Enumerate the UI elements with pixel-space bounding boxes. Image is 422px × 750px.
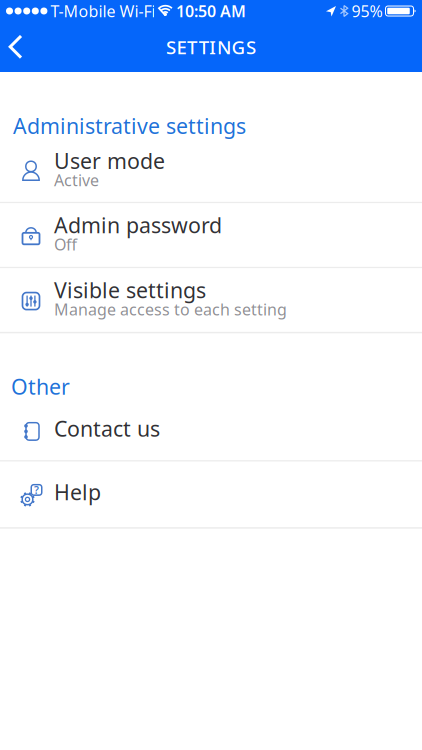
button[interactable]: ? [0,462,422,527]
staticText: SETTINGS [166,35,256,59]
staticText: 10:50 AM [176,0,246,22]
staticText: Help [54,478,101,506]
staticText: Visible settings [54,276,206,304]
staticText: Other [11,372,70,401]
staticText: ? [34,483,39,497]
button[interactable]: Admin password [0,203,422,267]
staticText: Admin password [54,211,222,239]
staticText: 95% [351,0,382,22]
button[interactable]: User mode [0,140,422,202]
staticText: User mode [54,146,165,175]
staticText: Manage access to each setting [54,299,287,320]
staticText: T-Mobile Wi-Fi [50,0,155,22]
button[interactable]: Visible settings [0,268,422,332]
staticText: Active [54,169,99,191]
staticText: Administrative settings [13,111,246,140]
button[interactable]: Contact us [0,401,422,460]
staticText: Off [54,234,77,255]
button[interactable]: Back [0,23,24,71]
staticText: Contact us [54,414,160,442]
